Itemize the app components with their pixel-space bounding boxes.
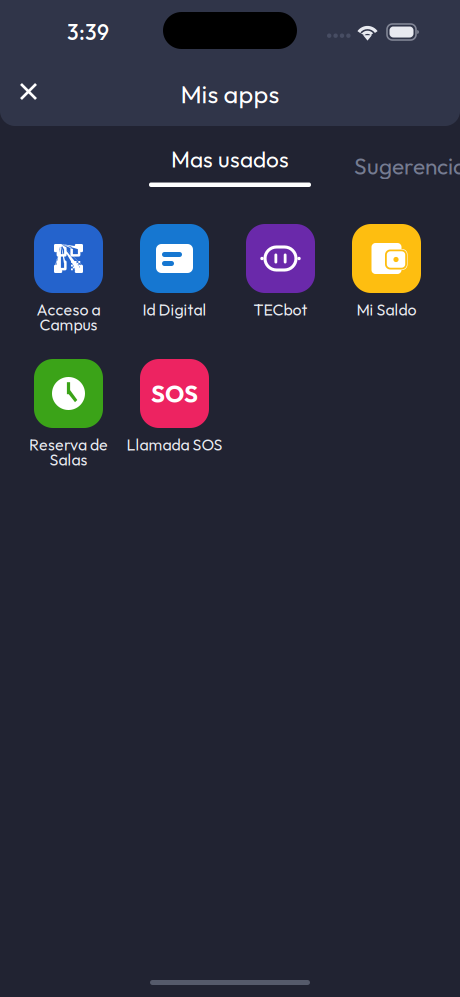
button[interactable]: SOS [124, 359, 224, 477]
staticText: Mis apps [180, 78, 279, 110]
button[interactable]: Reserva de [18, 359, 118, 477]
staticText: Acceso a [36, 299, 100, 320]
button[interactable]: Sugerencias [320, 146, 460, 194]
button[interactable]: Acceso a [18, 224, 118, 342]
button[interactable]: TECbot [230, 224, 330, 342]
staticText: Campus [39, 314, 97, 335]
staticText: Mas usados [171, 145, 289, 173]
staticText: 3:39 [67, 19, 109, 45]
button[interactable]: Mas usados [135, 139, 325, 187]
staticText: TECbot [253, 299, 307, 320]
staticText: Llamada SOS [126, 434, 222, 455]
staticText: Reserva de [29, 434, 108, 455]
staticText: Salas [49, 449, 87, 470]
button[interactable]: Id Digital [124, 224, 224, 342]
staticText: SOS [151, 378, 198, 409]
button[interactable]: Close [7, 70, 51, 114]
staticText: Sugerencias [354, 152, 460, 180]
staticText: Id Digital [142, 299, 206, 320]
staticText: Mi Saldo [356, 299, 416, 320]
button[interactable]: Mi Saldo [336, 224, 436, 342]
